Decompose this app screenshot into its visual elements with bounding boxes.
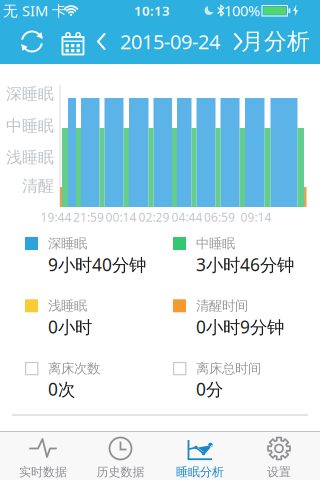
staticText: 21:59 [73,209,104,225]
staticText: 历史数据 [96,465,144,479]
staticText: 中睡眠 [6,116,54,136]
staticText: 睡眠分析 [176,465,224,479]
staticText: 0次 [48,378,75,401]
staticText: 月分析 [241,28,310,55]
staticText: 浅睡眠 [48,298,87,314]
staticText: 2015-09-24 [120,28,220,55]
staticText: 清醒 [22,176,54,196]
staticText: 深睡眠 [48,235,87,252]
button[interactable] [95,32,107,50]
button[interactable] [232,32,244,50]
staticText: 0小时 [48,315,92,338]
staticText: 09:14 [240,209,271,225]
staticText: 02:29 [138,209,169,225]
staticText: 清醒时间 [196,298,248,314]
staticText: 深睡眠 [6,84,54,104]
button[interactable]: 实时数据 [13,431,73,480]
staticText: 100% [224,1,260,20]
staticText: 中睡眠 [196,235,235,252]
staticText: 设置 [267,465,291,479]
staticText: 00:14 [105,209,136,225]
staticText: 06:59 [204,209,235,225]
staticText: 实时数据 [19,465,67,479]
button[interactable]: 月分析 [241,28,310,55]
staticText: 19:44 [40,209,71,225]
button[interactable]: 离床次数 [25,361,145,377]
button[interactable]: 历史数据 [90,431,150,480]
staticText: 无 SIM 卡 [3,1,67,20]
button[interactable] [60,29,86,55]
staticText: 10:13 [134,2,170,19]
button[interactable]: 离床总时间 [173,361,293,377]
staticText: 0分 [196,378,223,401]
staticText: 离床总时间 [196,360,261,377]
staticText: 3小时46分钟 [196,253,294,276]
staticText: 浅睡眠 [6,148,54,167]
button[interactable]: 睡眠分析 [170,431,230,480]
staticText: 9小时40分钟 [48,253,146,276]
button[interactable]: 设置 [249,431,309,480]
button[interactable] [19,28,45,54]
staticText: 离床次数 [48,360,100,377]
staticText: 04:44 [171,209,202,225]
staticText: 0小时9分钟 [196,315,284,338]
